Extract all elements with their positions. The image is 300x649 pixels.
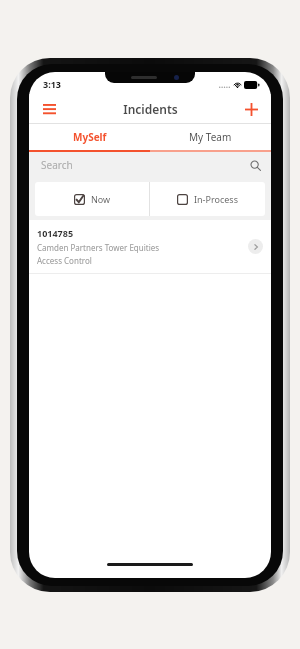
button[interactable]: Now (35, 182, 149, 216)
other: Search (250, 160, 261, 171)
staticText: Incidents (123, 101, 178, 117)
button[interactable]: In-Process (150, 182, 265, 216)
staticText: MySelf (73, 130, 107, 144)
staticText: Access Control (37, 255, 92, 266)
button[interactable]: Add incident (237, 95, 265, 123)
button[interactable]: Menu (35, 95, 63, 123)
staticText: Now (91, 193, 111, 205)
staticText: 3:13 (43, 78, 61, 90)
staticText: My Team (189, 130, 232, 144)
staticText: In-Process (194, 193, 238, 205)
button[interactable]: Open incident details (248, 239, 263, 254)
staticText: Search (41, 158, 73, 172)
button[interactable]: My Team (150, 124, 271, 150)
button[interactable]: 1014785 (29, 220, 271, 274)
button[interactable]: Search (29, 152, 271, 178)
button[interactable]: MySelf (29, 124, 150, 150)
staticText: Camden Partners Tower Equities (37, 242, 160, 253)
staticText: 1014785 (37, 227, 74, 239)
